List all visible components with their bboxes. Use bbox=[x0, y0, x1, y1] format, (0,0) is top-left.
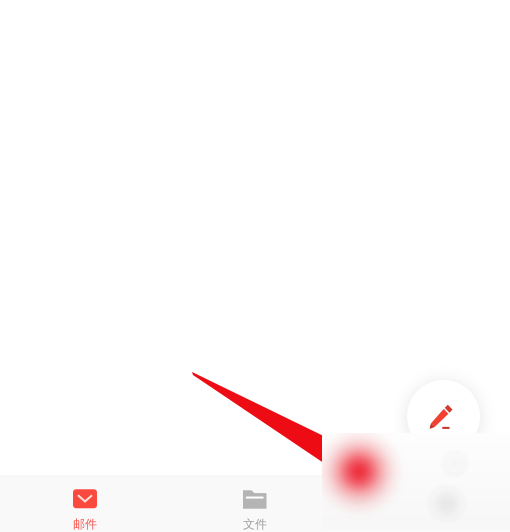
button[interactable]: Compose bbox=[407, 380, 480, 453]
staticText: 文件 bbox=[243, 517, 267, 532]
button[interactable] bbox=[340, 476, 510, 532]
staticText: 邮件 bbox=[73, 517, 97, 532]
button[interactable]: 文件 bbox=[170, 476, 340, 532]
button[interactable]: 邮件 bbox=[0, 476, 170, 532]
